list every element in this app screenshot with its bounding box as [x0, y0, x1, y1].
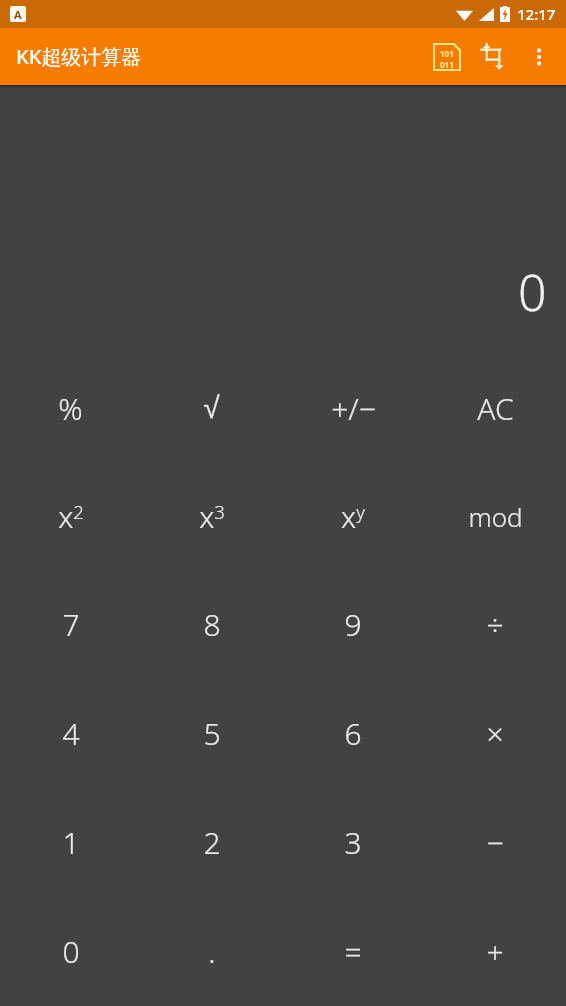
staticText: KK超级计算器 [16, 43, 142, 70]
button[interactable]: More options [516, 34, 562, 80]
staticText: 0 [62, 931, 80, 972]
button[interactable]: + [424, 897, 566, 1006]
button[interactable]: . [141, 897, 282, 1006]
staticText: % [58, 388, 83, 429]
button[interactable]: x3 [141, 462, 282, 570]
button[interactable]: − [424, 788, 566, 897]
staticText: 4 [62, 713, 80, 754]
staticText: 0 [518, 258, 547, 326]
staticText: A [14, 7, 22, 22]
button[interactable]: 7 [0, 570, 141, 679]
staticText: x2 [58, 496, 84, 537]
button[interactable]: = [282, 897, 424, 1006]
staticText: xy [341, 496, 365, 537]
button[interactable]: 2 [141, 788, 282, 897]
button[interactable]: 9 [282, 570, 424, 679]
staticText: − [486, 822, 504, 863]
button[interactable]: √ [141, 354, 282, 462]
button[interactable]: 8 [141, 570, 282, 679]
staticText: 3 [344, 822, 362, 863]
button[interactable]: 6 [282, 679, 424, 788]
button[interactable]: ÷ [424, 570, 566, 679]
staticText: 12:17 [517, 4, 556, 24]
staticText: 011 [440, 59, 454, 70]
button[interactable]: 4 [0, 679, 141, 788]
staticText: AC [477, 388, 514, 429]
button[interactable]: 0 [0, 897, 141, 1006]
staticText: 7 [62, 604, 80, 645]
staticText: 2 [203, 822, 221, 863]
button[interactable]: 3 [282, 788, 424, 897]
staticText: +/− [331, 388, 376, 429]
staticText: × [486, 713, 504, 754]
button[interactable]: Binary conversion [424, 34, 470, 80]
button[interactable]: x2 [0, 462, 141, 570]
staticText: 1 [62, 822, 80, 863]
staticText: ÷ [486, 604, 504, 645]
staticText: √ [203, 391, 220, 425]
staticText: . [208, 931, 216, 972]
staticText: x3 [199, 496, 225, 537]
button[interactable]: mod [424, 462, 566, 570]
button[interactable]: 1 [0, 788, 141, 897]
staticText: 8 [203, 604, 221, 645]
staticText: 101 [440, 48, 454, 59]
staticText: 6 [344, 713, 362, 754]
button[interactable]: % [0, 354, 141, 462]
button[interactable]: × [424, 679, 566, 788]
button[interactable]: Crop [470, 34, 516, 80]
button[interactable]: +/− [282, 354, 424, 462]
button[interactable]: 5 [141, 679, 282, 788]
staticText: mod [468, 499, 523, 534]
staticText: 5 [203, 713, 221, 754]
staticText: + [486, 931, 504, 972]
button[interactable]: xy [282, 462, 424, 570]
staticText: 9 [344, 604, 362, 645]
button[interactable]: AC [424, 354, 566, 462]
staticText: = [344, 931, 362, 972]
